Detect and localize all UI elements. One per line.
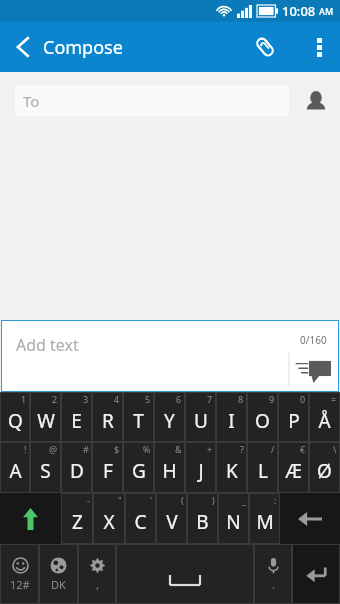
staticText: Y [164,408,175,434]
staticText: P [288,408,300,434]
staticText: 7 [207,393,213,405]
button[interactable]: Attach [243,25,287,69]
staticText: G [132,458,146,484]
button[interactable]: _ [218,493,249,544]
button[interactable]: 2 [30,392,61,442]
button[interactable]: 9 [247,392,278,442]
staticText: % [143,443,151,455]
staticText: ? [240,443,244,455]
staticText: 9 [269,393,275,405]
staticText: 10:08 [282,2,316,20]
button[interactable]: Symbols [0,544,39,604]
button[interactable]: @ [30,442,61,493]
staticText: , [96,577,99,592]
staticText: L [258,458,268,484]
staticText: N [226,509,241,535]
button[interactable]: To [15,86,289,116]
staticText: I [228,408,235,434]
button[interactable]: 5 [123,392,154,442]
staticText: W [37,408,55,434]
button[interactable]: & [154,442,185,493]
staticText: H [162,458,177,484]
button[interactable]: ) [187,493,218,544]
staticText: 1 [21,393,27,405]
staticText: Compose [43,35,123,60]
staticText: # [83,443,89,455]
button[interactable]: 4 [92,392,123,442]
staticText: ' [150,494,153,506]
staticText: \ [333,443,337,455]
button[interactable]: ! [0,442,30,493]
button[interactable]: ( [156,493,187,544]
button[interactable]: Settings [78,544,116,604]
button[interactable]: Enter [292,544,340,604]
button[interactable]: Back [0,24,46,70]
button[interactable]: Add text [1,320,339,392]
staticText: $ [114,443,120,455]
button[interactable]: 1 [0,392,30,442]
staticText: - [87,494,90,506]
button[interactable]: Backspace [280,493,340,544]
staticText: T [133,408,144,434]
button[interactable]: Pick contact [297,82,335,120]
button[interactable]: 8 [216,392,247,442]
staticText: Æ [285,458,302,484]
staticText: D [70,458,84,484]
staticText: Add text [16,334,79,356]
staticText: . [272,577,275,592]
button[interactable]: Language [39,544,78,604]
staticText: 12# [10,577,30,592]
button[interactable]: = [309,392,340,442]
staticText: B [196,509,209,535]
staticText: 4 [114,393,120,405]
button[interactable]: 6 [154,392,185,442]
button[interactable]: : [249,493,280,544]
staticText: : [274,494,277,506]
button[interactable]: $ [92,442,123,493]
button[interactable]: ? [216,442,247,493]
staticText: E [71,408,82,434]
staticText: / [271,443,275,455]
staticText: J [198,458,204,484]
staticText: AM [319,5,334,17]
staticText: R [102,408,114,434]
button[interactable]: More options [298,26,340,68]
staticText: Å [318,408,331,434]
staticText: 6 [176,393,182,405]
staticText: C [134,509,147,535]
staticText: + [207,443,213,455]
staticText: V [166,509,178,535]
staticText: Q [8,408,23,434]
button[interactable]: 3 [61,392,92,442]
staticText: ( [181,494,184,506]
button[interactable]: € [278,442,309,493]
button[interactable]: \ [309,442,340,493]
staticText: € [300,443,306,455]
staticText: ) [212,494,215,506]
button[interactable]: 7 [185,392,216,442]
staticText: O [255,408,270,434]
staticText: 8 [238,393,244,405]
staticText: & [175,443,182,455]
staticText: Z [72,509,83,535]
staticText: To [23,91,40,111]
staticText: U [194,408,208,434]
button[interactable]: Space [116,544,254,604]
button[interactable]: Voice input [254,544,292,604]
button[interactable]: " [93,493,125,544]
staticText: A [9,458,22,484]
button[interactable]: Shift [0,493,61,544]
staticText: Ø [317,458,332,484]
button[interactable]: Send [289,350,339,392]
staticText: DK [51,577,66,592]
staticText: F [103,458,113,484]
button[interactable]: + [185,442,216,493]
button[interactable]: - [61,493,93,544]
button[interactable]: ' [125,493,156,544]
button[interactable]: 0 [278,392,309,442]
button[interactable]: / [247,442,278,493]
staticText: ! [24,443,27,455]
button[interactable]: # [61,442,92,493]
button[interactable]: % [123,442,154,493]
staticText: S [40,458,51,484]
